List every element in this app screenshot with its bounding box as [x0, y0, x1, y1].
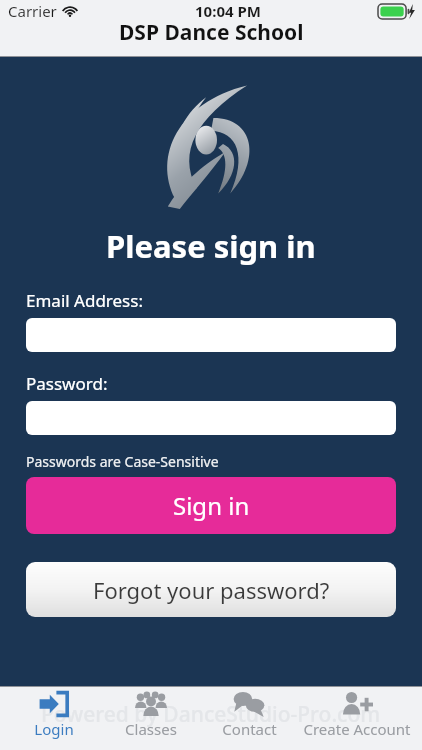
button[interactable]: Create Account [302, 691, 412, 739]
button[interactable] [26, 318, 396, 352]
staticText: Contact [222, 719, 277, 739]
other: Create Account [341, 691, 373, 717]
button[interactable]: Forgot your password? [26, 562, 396, 617]
other: Login [39, 691, 69, 717]
other: Classes [135, 691, 167, 717]
staticText: 10:04 PM [195, 1, 261, 21]
other: Contact [233, 691, 265, 717]
staticText: Passwords are Case-Sensitive [26, 452, 219, 471]
staticText: Please sign in [106, 225, 316, 267]
button[interactable]: Login [10, 691, 98, 739]
button[interactable]: Contact [205, 691, 293, 739]
staticText: Forgot your password? [93, 575, 330, 605]
staticText: DSP Dance School [119, 18, 304, 47]
staticText: Sign in [173, 489, 250, 522]
staticText: Login [34, 719, 74, 739]
staticText: Create Account [303, 719, 411, 739]
staticText: Password: [26, 372, 108, 395]
staticText: Powered by DanceStudio-Pro.com [41, 700, 381, 729]
staticText: Email Address: [26, 289, 143, 312]
button[interactable]: Sign in [26, 477, 396, 534]
button[interactable]: Classes [107, 691, 195, 739]
button[interactable] [26, 401, 396, 435]
staticText: Classes [125, 719, 177, 739]
staticText: Carrier [8, 1, 57, 21]
